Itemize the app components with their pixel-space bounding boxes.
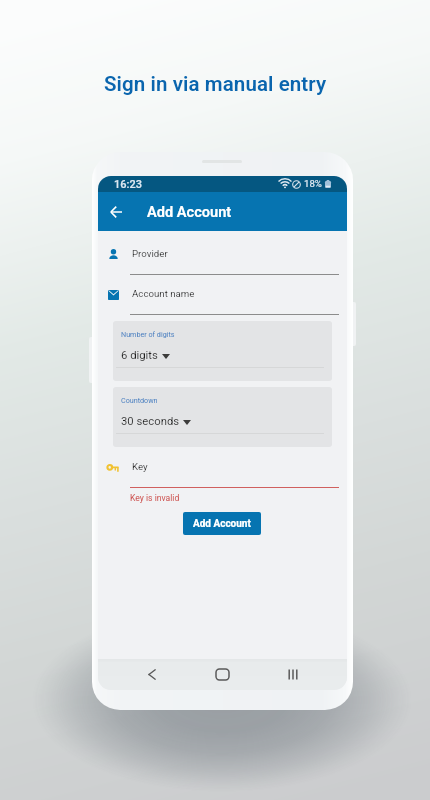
button[interactable]: Back [103,195,129,228]
staticText: 30 seconds [121,415,180,428]
staticText: 16:23 [114,178,142,191]
button[interactable]: Back [138,660,166,688]
button[interactable]: Home [208,660,236,688]
staticText: 6 digits [121,349,158,362]
button[interactable]: Key [98,455,347,490]
staticText: Number of digits [121,330,175,338]
staticText: Key is invalid [130,493,180,503]
button[interactable]: Add Account [183,512,261,535]
staticText: Key [132,461,148,472]
button[interactable]: Account name [98,282,347,317]
staticText: Countdown [121,396,158,404]
staticText: 18% [304,178,322,189]
button[interactable]: Provider [98,242,347,277]
staticText: Account name [132,288,195,299]
staticText: Add Account [147,203,232,220]
staticText: Sign in via manual entry [104,72,327,96]
button[interactable]: Number of digits [113,321,332,381]
button[interactable]: Countdown [113,387,332,447]
button[interactable]: Recent apps [279,660,307,688]
staticText: Provider [132,248,168,259]
staticText: Add Account [193,518,251,530]
